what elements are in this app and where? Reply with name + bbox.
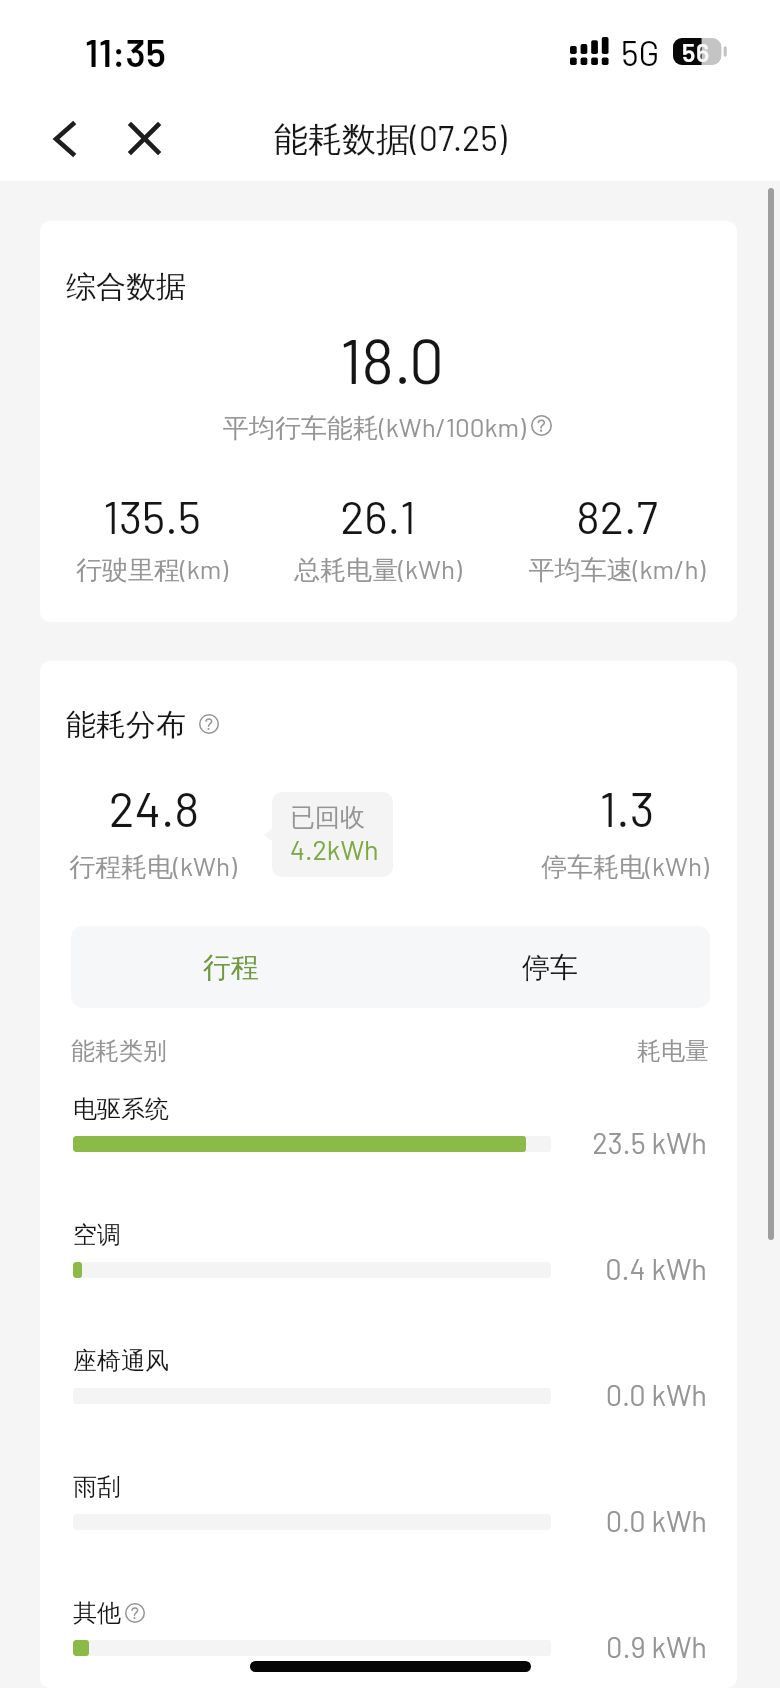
staticText: 能耗类别	[71, 1036, 167, 1066]
button[interactable]: About average driving consumption	[531, 415, 552, 436]
staticText: 行程	[203, 950, 259, 985]
button[interactable]: About energy distribution	[199, 714, 219, 734]
staticText: 座椅通风	[73, 1346, 169, 1376]
other: Battery 56 percent	[673, 38, 727, 65]
staticText: 135.5	[0, 489, 372, 543]
staticText: 23.5 kWh	[407, 1125, 707, 1160]
staticText: 总耗电量(kWh)	[158, 553, 598, 587]
staticText: 能耗数据(07.25)	[274, 117, 507, 161]
button[interactable]: 停车	[390, 926, 710, 1008]
button[interactable]: Back	[39, 114, 89, 164]
button[interactable]: Close	[119, 113, 169, 163]
button[interactable]: About other consumption	[125, 1603, 145, 1623]
staticText: 6	[696, 37, 710, 64]
staticText: 行驶里程(km)	[0, 553, 372, 587]
staticText: 5	[682, 37, 696, 64]
staticText: 电驱系统	[73, 1094, 169, 1124]
staticText: 能耗分布	[66, 706, 186, 744]
staticText: 18.0	[172, 322, 612, 396]
staticText: 综合数据	[66, 268, 186, 306]
staticText: 平均车速(km/h)	[397, 553, 780, 587]
staticText: 平均行车能耗(kWh/100km)	[223, 411, 526, 445]
button[interactable]: 行程	[71, 926, 390, 1008]
staticText: 停车	[522, 950, 578, 985]
staticText: 4.2kWh	[290, 833, 379, 865]
staticText: 已回收	[290, 802, 365, 833]
staticText: 0.4 kWh	[407, 1251, 707, 1286]
other: Signal strength	[570, 37, 609, 66]
staticText: 11:35	[85, 29, 166, 75]
staticText: 耗电量	[409, 1036, 709, 1066]
staticText: 5G	[621, 32, 660, 73]
staticText: 0.9 kWh	[407, 1629, 707, 1664]
staticText: 24.8	[0, 779, 374, 837]
staticText: 行程耗电(kWh)	[0, 850, 373, 884]
staticText: 26.1	[158, 489, 598, 543]
staticText: 其他	[73, 1598, 121, 1628]
staticText: 0.0 kWh	[407, 1377, 707, 1412]
staticText: 雨刮	[73, 1472, 121, 1502]
staticText: 空调	[73, 1220, 121, 1250]
staticText: 停车耗电(kWh)	[405, 850, 780, 884]
staticText: 0.0 kWh	[407, 1503, 707, 1538]
staticText: 1.3	[407, 779, 780, 837]
staticText: 82.7	[397, 489, 780, 543]
